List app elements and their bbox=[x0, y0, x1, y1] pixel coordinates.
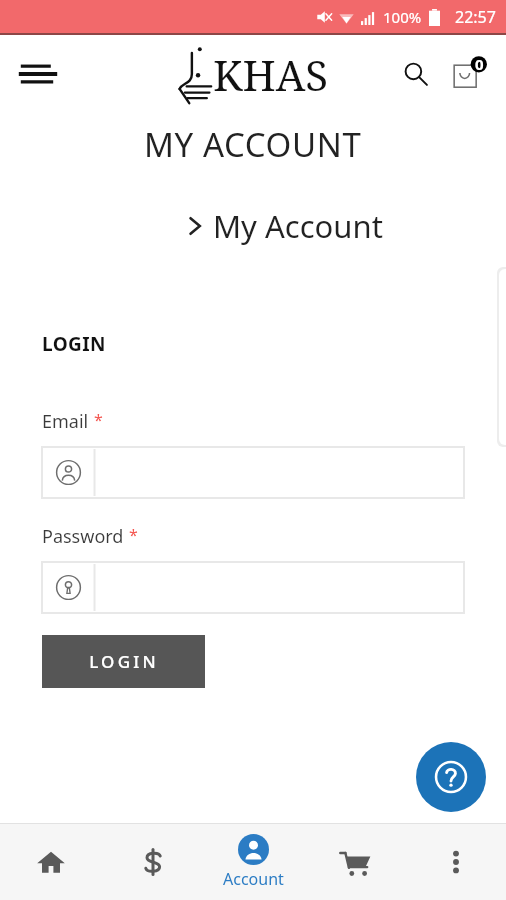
staticText: * bbox=[94, 409, 103, 431]
staticText: 22:57 bbox=[455, 6, 496, 28]
staticText: 100% bbox=[383, 7, 422, 27]
button[interactable]: Currency bbox=[102, 824, 203, 900]
button[interactable]: Menu bbox=[10, 46, 66, 102]
button[interactable]: Cart, 0 items bbox=[442, 46, 498, 102]
button[interactable]: LOGIN bbox=[42, 635, 205, 688]
staticText: LOGIN bbox=[89, 650, 159, 673]
button[interactable]: Account bbox=[203, 824, 304, 900]
staticText: Account bbox=[223, 868, 284, 890]
button[interactable]: More bbox=[405, 824, 506, 900]
button[interactable]: My Account bbox=[0, 205, 506, 247]
button[interactable]: Search bbox=[392, 50, 440, 98]
button[interactable]: Cart bbox=[304, 824, 405, 900]
staticText: KHAS bbox=[213, 46, 329, 103]
staticText: My Account bbox=[213, 205, 383, 247]
staticText: Email bbox=[42, 409, 89, 434]
staticText: Password bbox=[42, 524, 124, 549]
button[interactable]: Home bbox=[0, 824, 102, 900]
staticText: * bbox=[129, 524, 138, 546]
button[interactable]: Help bbox=[416, 742, 486, 812]
button[interactable] bbox=[42, 447, 464, 498]
staticText: 0 bbox=[475, 54, 484, 74]
button[interactable] bbox=[42, 562, 464, 613]
staticText: LOGIN bbox=[42, 331, 106, 357]
staticText: MY ACCOUNT bbox=[144, 122, 362, 167]
